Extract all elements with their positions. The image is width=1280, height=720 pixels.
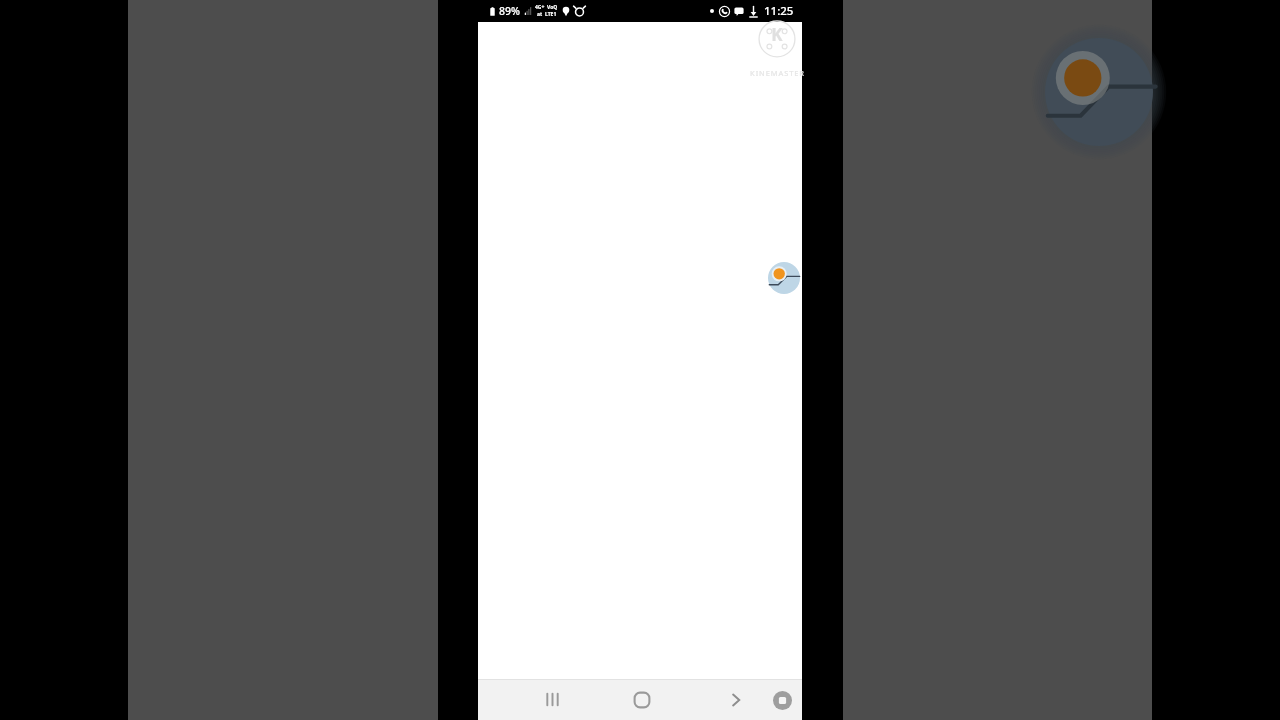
button[interactable]: Recent apps <box>530 679 574 720</box>
button[interactable]: Back <box>714 679 758 720</box>
staticText: K <box>771 23 783 46</box>
staticText: LTE1 <box>545 11 557 18</box>
button[interactable]: Home <box>619 679 665 720</box>
staticText: 89% <box>499 4 520 18</box>
staticText: VoQ <box>547 4 558 11</box>
staticText: 4G+ <box>535 4 545 11</box>
staticText: at <box>537 11 543 18</box>
button[interactable]: Stop recording <box>764 682 800 718</box>
staticText: KINEMASTER <box>750 68 805 78</box>
staticText: 11:25 <box>764 3 794 19</box>
